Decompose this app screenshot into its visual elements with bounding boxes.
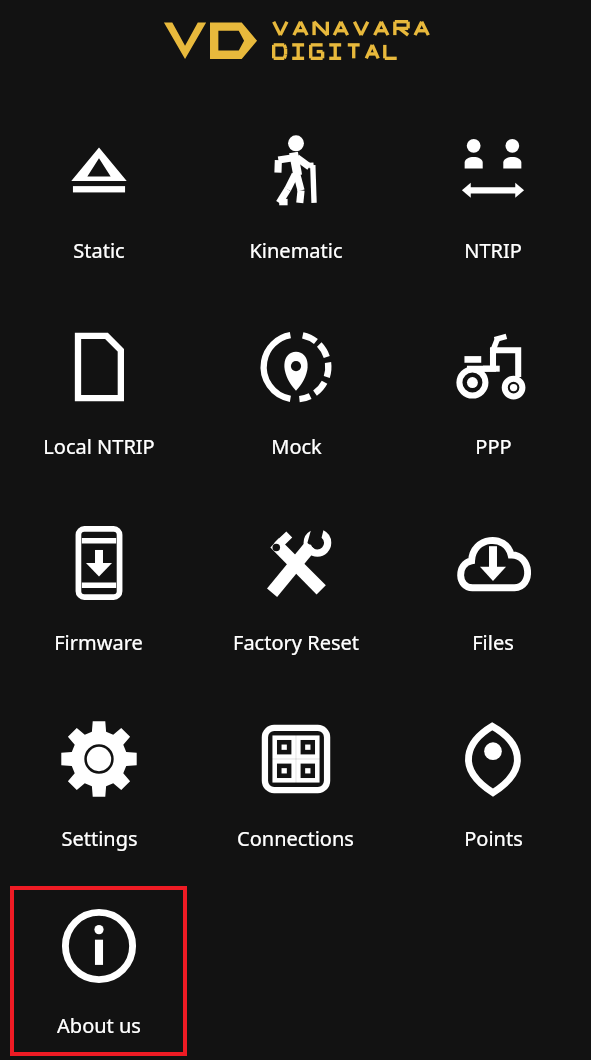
button[interactable]: About us	[10, 886, 187, 1056]
staticText: Factory Reset	[233, 629, 359, 656]
button[interactable]: NTRIP	[404, 102, 581, 290]
button[interactable]: PPP	[404, 298, 581, 486]
staticText: Settings	[61, 825, 138, 852]
staticText: Firmware	[54, 629, 143, 656]
button[interactable]: Kinematic	[207, 102, 384, 290]
button[interactable]: Connections	[207, 690, 384, 878]
staticText: Static	[73, 237, 125, 264]
staticText: Local NTRIP	[43, 433, 155, 460]
button[interactable]: Points	[404, 690, 581, 878]
button[interactable]: Files	[404, 494, 581, 682]
staticText: Mock	[271, 433, 322, 460]
staticText: Files	[472, 629, 514, 656]
button[interactable]: Local NTRIP	[10, 298, 187, 486]
button[interactable]: Mock	[207, 298, 384, 486]
staticText: NTRIP	[464, 237, 522, 264]
staticText: About us	[57, 1012, 141, 1039]
staticText: Connections	[237, 825, 354, 852]
button[interactable]: Static	[10, 102, 187, 290]
button[interactable]: Factory Reset	[207, 494, 384, 682]
button[interactable]: Firmware	[10, 494, 187, 682]
staticText: Points	[464, 825, 523, 852]
staticText: Kinematic	[249, 237, 343, 264]
staticText: PPP	[475, 433, 512, 460]
button[interactable]: Settings	[10, 690, 187, 878]
